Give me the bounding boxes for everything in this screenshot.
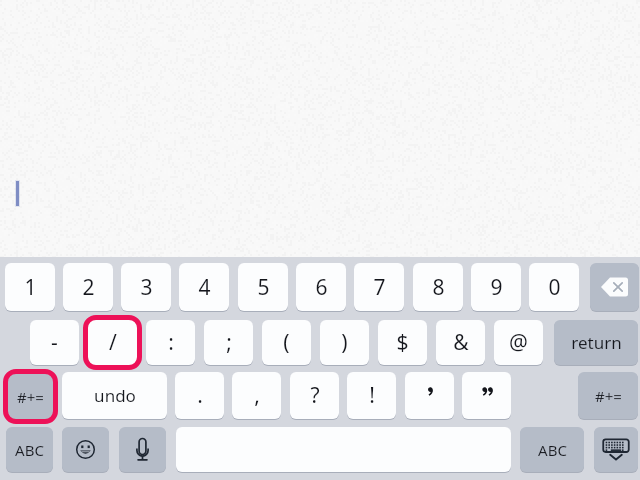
button[interactable]: ; <box>204 320 253 365</box>
staticText: ABC <box>538 440 567 460</box>
button[interactable]: : <box>146 320 195 365</box>
staticText: 8 <box>432 273 445 302</box>
staticText: ; <box>226 328 232 357</box>
button[interactable]: 1 <box>5 263 55 311</box>
button[interactable]: ( <box>262 320 311 365</box>
staticText: 0 <box>548 273 561 302</box>
button[interactable]: return <box>554 320 638 365</box>
staticText: : <box>168 328 174 357</box>
button[interactable]: / <box>88 320 137 365</box>
staticText: #+= <box>595 386 622 406</box>
button[interactable]: Quotation mark <box>462 372 511 419</box>
staticText: 2 <box>82 273 95 302</box>
staticText: ? <box>310 381 320 410</box>
staticText: ) <box>341 328 348 357</box>
staticText: $ <box>396 328 409 357</box>
staticText: & <box>453 328 469 357</box>
button[interactable]: 3 <box>121 263 171 311</box>
staticText: / <box>109 328 117 357</box>
staticText: 5 <box>257 273 270 302</box>
button[interactable]: #+= <box>8 374 53 419</box>
button[interactable]: . <box>175 372 224 419</box>
button[interactable]: Backspace <box>590 263 639 311</box>
button[interactable]: 0 <box>529 263 579 311</box>
staticText: return <box>571 331 622 354</box>
button[interactable]: - <box>30 320 79 365</box>
button[interactable]: ABC <box>520 427 584 472</box>
staticText: 7 <box>373 273 386 302</box>
button[interactable]: Hide keyboard <box>594 427 638 472</box>
staticText: @ <box>509 328 528 357</box>
button[interactable]: #+= <box>578 372 638 419</box>
staticText: . <box>197 381 203 410</box>
staticText: - <box>51 328 58 357</box>
button[interactable]: 4 <box>179 263 229 311</box>
staticText: ! <box>369 381 375 410</box>
button[interactable]: 6 <box>296 263 346 311</box>
button[interactable]: ) <box>320 320 369 365</box>
staticText: 9 <box>490 273 503 302</box>
button[interactable]: 9 <box>471 263 521 311</box>
staticText: 1 <box>24 273 37 302</box>
button[interactable]: 5 <box>238 263 288 311</box>
staticText: , <box>254 381 260 410</box>
button[interactable]: @ <box>494 320 543 365</box>
button[interactable]: ABC <box>6 427 53 472</box>
button[interactable]: 2 <box>63 263 113 311</box>
button[interactable]: ! <box>347 372 396 419</box>
staticText: undo <box>94 384 136 407</box>
button[interactable]: & <box>436 320 485 365</box>
button[interactable]: Emoji <box>62 427 109 472</box>
staticText: 6 <box>315 273 328 302</box>
button[interactable]: Apostrophe <box>405 372 454 419</box>
button[interactable]: ? <box>290 372 339 419</box>
staticText: 3 <box>140 273 153 302</box>
button[interactable]: $ <box>378 320 427 365</box>
staticText: #+= <box>17 387 44 407</box>
staticText: 4 <box>198 273 211 302</box>
staticText: ABC <box>15 440 44 460</box>
button[interactable]: undo <box>62 372 167 419</box>
button[interactable]: 7 <box>354 263 404 311</box>
button[interactable]: 8 <box>413 263 463 311</box>
button[interactable]: , <box>232 372 281 419</box>
staticText: ( <box>283 328 290 357</box>
button[interactable]: Dictation <box>119 427 166 472</box>
